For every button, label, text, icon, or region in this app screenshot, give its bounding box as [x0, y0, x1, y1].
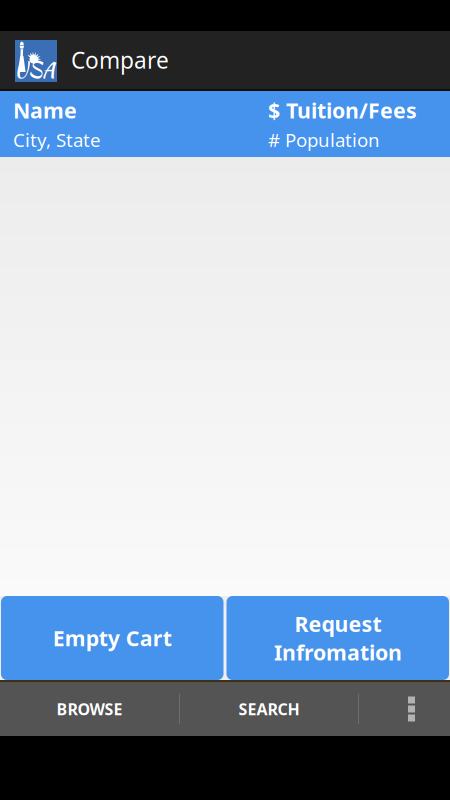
staticText: SEARCH: [238, 698, 299, 720]
button[interactable]: BROWSE: [0, 682, 179, 736]
staticText: $ Tuition/Fees: [268, 96, 417, 124]
staticText: Compare: [71, 45, 169, 75]
staticText: BROWSE: [56, 698, 122, 720]
staticText: Name: [13, 96, 77, 124]
button[interactable]: Request Infromation: [226, 596, 449, 680]
button[interactable]: SEARCH: [180, 682, 358, 736]
staticText: # Population: [268, 127, 380, 152]
staticText: Empty Cart: [53, 624, 172, 652]
staticText: Request Infromation: [274, 610, 402, 666]
button[interactable]: More options: [359, 682, 450, 736]
button[interactable]: Empty Cart: [1, 596, 223, 680]
staticText: USA: [14, 55, 55, 84]
staticText: City, State: [13, 127, 101, 152]
